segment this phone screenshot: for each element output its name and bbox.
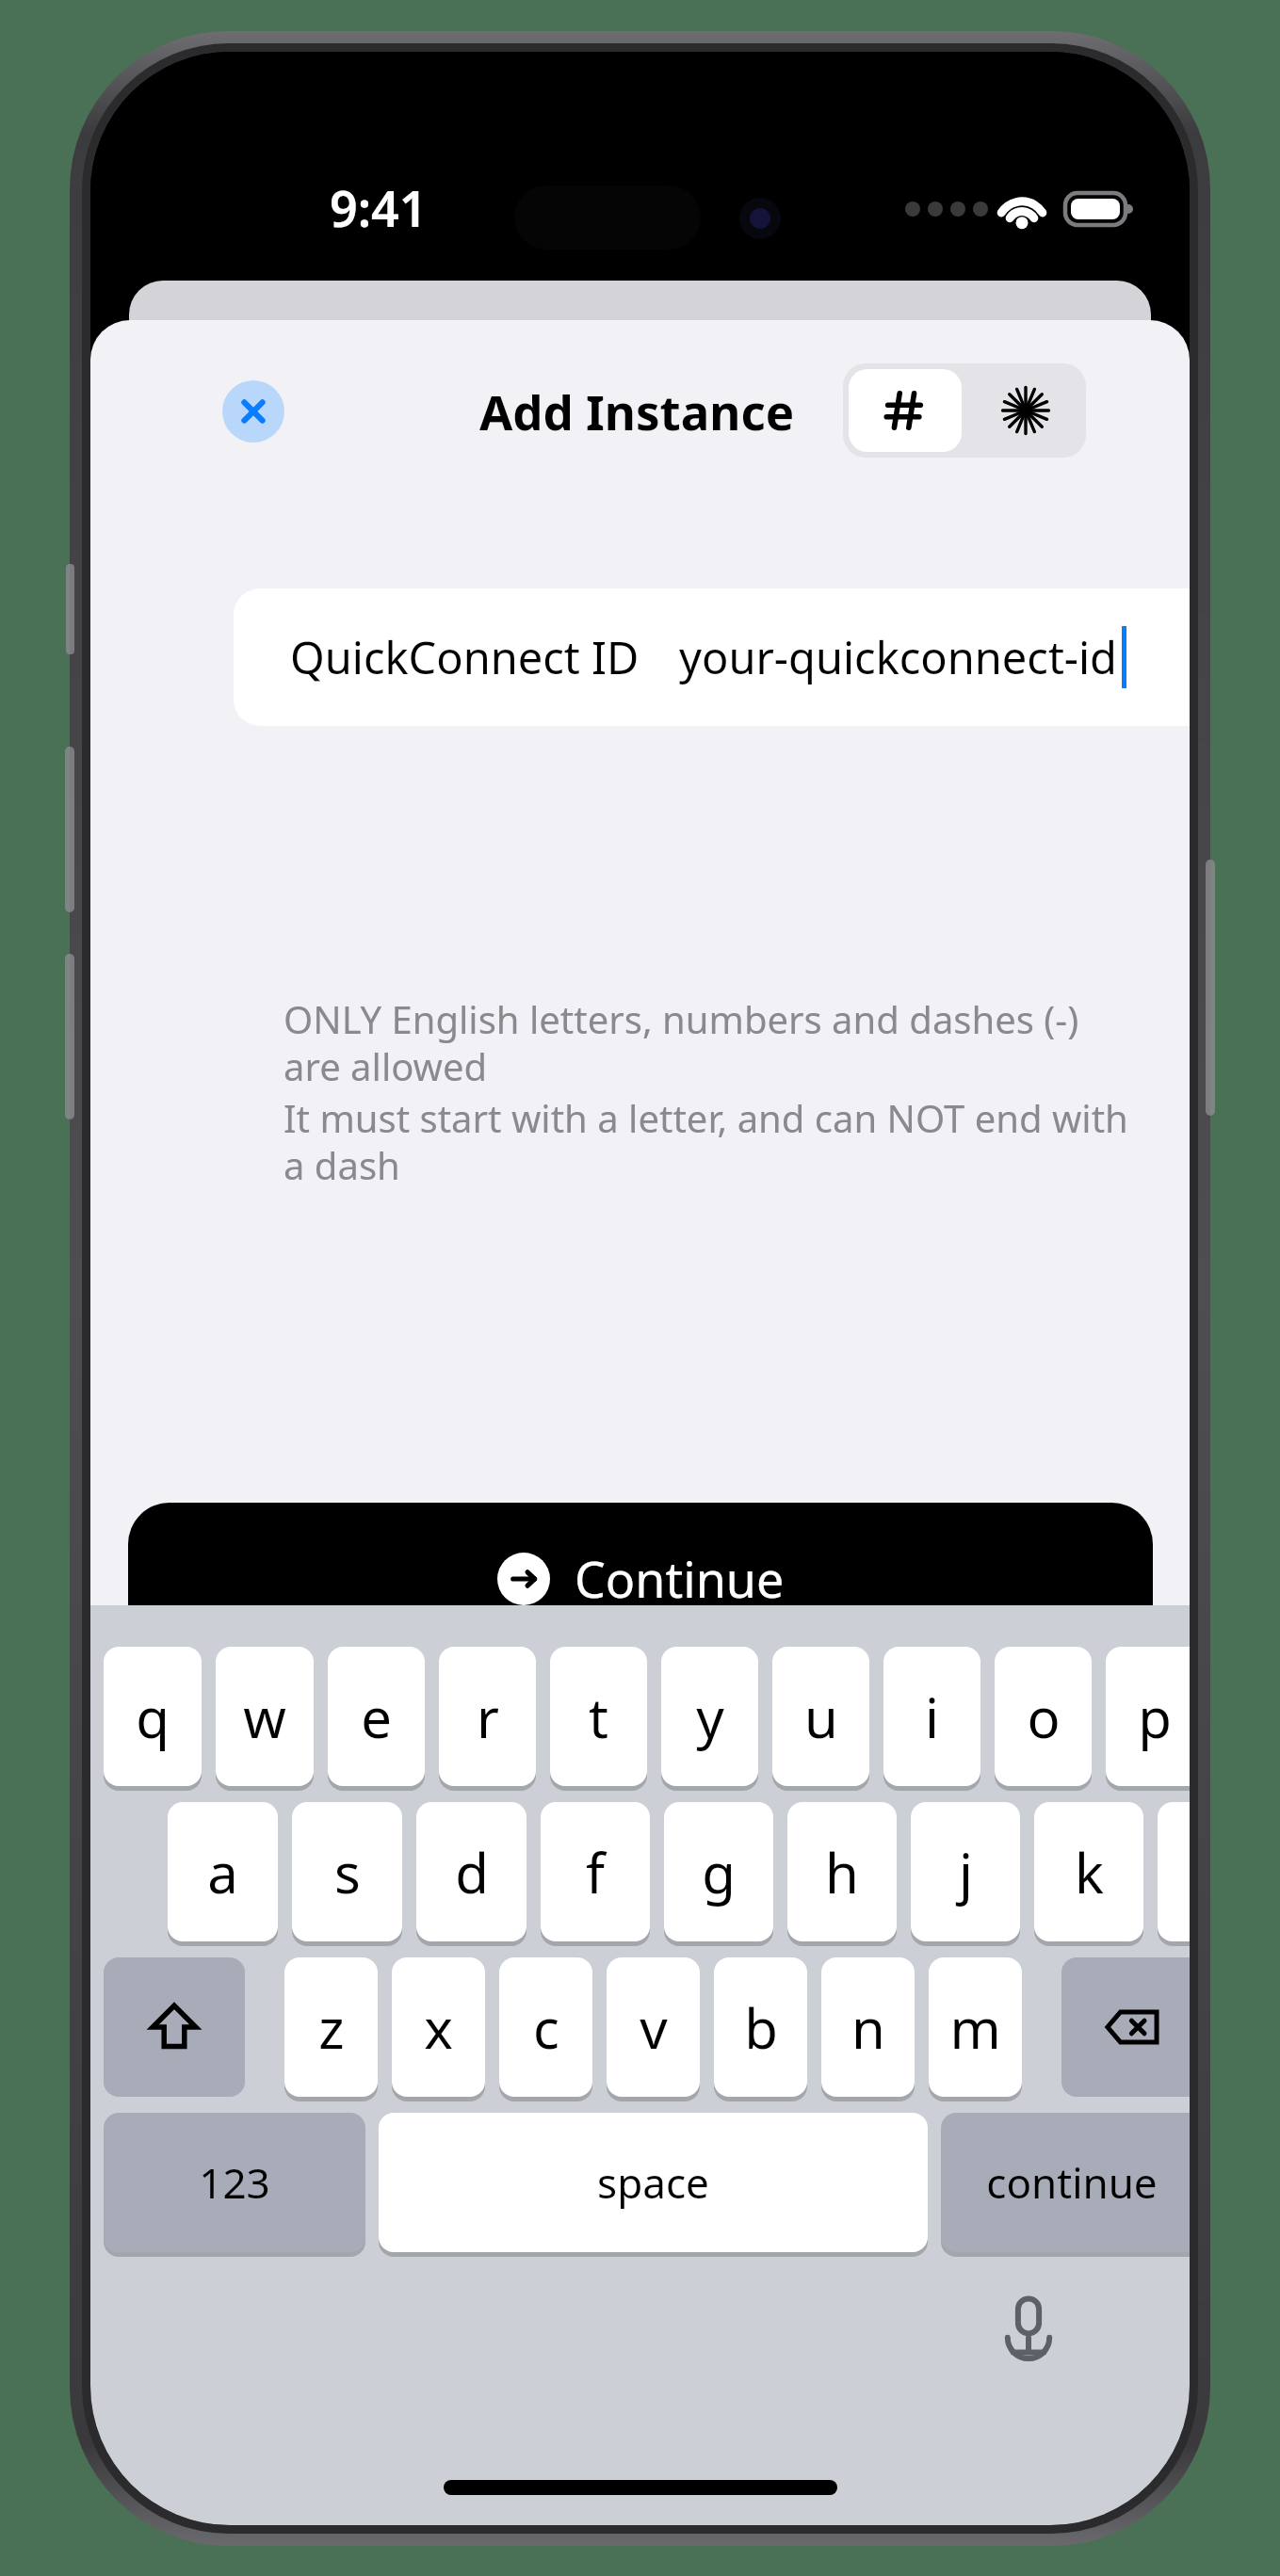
button[interactable]: e — [328, 1647, 425, 1786]
staticText: m — [949, 1990, 1001, 2065]
staticText: j — [959, 1835, 973, 1909]
staticText: c — [533, 1990, 559, 2065]
button[interactable]: space — [379, 2113, 928, 2252]
button[interactable]: t — [550, 1647, 647, 1786]
button[interactable]: w — [216, 1647, 314, 1786]
staticText: f — [586, 1835, 605, 1909]
staticText: t — [589, 1680, 608, 1754]
staticText: ONLY English letters, numbers and dashes… — [284, 993, 1079, 1092]
staticText: space — [597, 2154, 709, 2211]
staticText: It must start with a letter, and can NOT… — [284, 1092, 1128, 1191]
button[interactable]: y — [661, 1647, 758, 1786]
button[interactable]: Custom URL — [964, 363, 1086, 458]
staticText: a — [207, 1835, 238, 1909]
staticText: o — [1027, 1680, 1061, 1754]
button[interactable]: b — [714, 1957, 807, 2097]
staticText: y — [696, 1680, 724, 1754]
button[interactable]: k — [1034, 1802, 1143, 1941]
staticText: k — [1075, 1835, 1104, 1909]
staticText: i — [925, 1680, 939, 1754]
staticText: Add Instance — [479, 378, 795, 443]
button[interactable]: d — [416, 1802, 527, 1941]
button[interactable]: o — [995, 1647, 1092, 1786]
button[interactable]: i — [883, 1647, 980, 1786]
staticText: z — [318, 1990, 345, 2065]
staticText: p — [1138, 1680, 1172, 1754]
staticText: r — [477, 1680, 499, 1754]
staticText: q — [136, 1680, 170, 1754]
button[interactable]: c — [499, 1957, 592, 2097]
button[interactable]: u — [772, 1647, 869, 1786]
button[interactable]: Dictate — [988, 2286, 1069, 2367]
staticText: d — [455, 1835, 489, 1909]
button[interactable]: m — [929, 1957, 1022, 2097]
staticText: u — [804, 1680, 838, 1754]
button[interactable]: h — [787, 1802, 897, 1941]
button[interactable]: continue — [941, 2113, 1190, 2252]
staticText: 9:41 — [330, 174, 428, 241]
staticText: n — [851, 1990, 885, 2065]
staticText: h — [825, 1835, 859, 1909]
button[interactable]: j — [911, 1802, 1020, 1941]
button[interactable]: v — [607, 1957, 700, 2097]
button[interactable]: QuickConnect ID — [843, 363, 964, 458]
button[interactable]: s — [292, 1802, 402, 1941]
button[interactable]: Shift — [104, 1957, 245, 2097]
button[interactable]: q — [104, 1647, 202, 1786]
staticText: x — [424, 1990, 453, 2065]
button[interactable]: f — [541, 1802, 650, 1941]
staticText: b — [744, 1990, 778, 2065]
button[interactable]: p — [1106, 1647, 1190, 1786]
staticText: your-quickconnect-id — [679, 627, 1118, 687]
staticText: w — [243, 1680, 286, 1754]
staticText: 123 — [199, 2154, 270, 2211]
button[interactable]: Backspace — [1061, 1957, 1190, 2097]
staticText: continue — [986, 2154, 1158, 2211]
button[interactable]: n — [821, 1957, 915, 2097]
button[interactable]: g — [664, 1802, 773, 1941]
button[interactable]: Continue — [128, 1503, 1153, 1653]
button[interactable]: x — [392, 1957, 485, 2097]
button[interactable]: r — [439, 1647, 536, 1786]
button[interactable]: 123 — [104, 2113, 365, 2252]
button[interactable]: l — [1158, 1802, 1190, 1941]
staticText: g — [702, 1835, 736, 1909]
button[interactable]: a — [168, 1802, 278, 1941]
staticText: s — [334, 1835, 361, 1909]
staticText: Continue — [575, 1545, 785, 1612]
button[interactable]: z — [284, 1957, 378, 2097]
staticText: QuickConnect ID — [290, 627, 640, 687]
staticText: e — [361, 1680, 392, 1754]
button[interactable]: QuickConnect ID — [234, 588, 1190, 726]
staticText: v — [640, 1990, 668, 2065]
button[interactable]: Close — [222, 380, 284, 443]
